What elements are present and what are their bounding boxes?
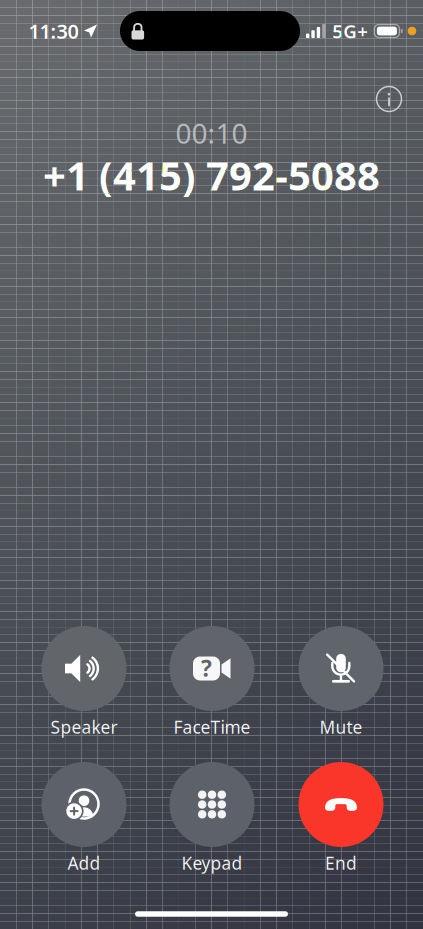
staticText: Keypad	[181, 851, 242, 874]
staticText: 11:30	[28, 18, 78, 44]
button[interactable]: End	[287, 762, 395, 880]
button[interactable]: Speaker	[30, 626, 138, 744]
staticText: FaceTime	[173, 715, 250, 738]
button[interactable]: Add	[30, 762, 138, 880]
button[interactable]: ?	[158, 626, 266, 744]
staticText: +1 (415) 792-5088	[43, 148, 380, 201]
button[interactable]: Mute	[287, 626, 395, 744]
staticText: Mute	[319, 715, 362, 738]
staticText: Add	[67, 851, 100, 874]
staticText: 5G+	[332, 19, 368, 43]
staticText: Speaker	[50, 715, 117, 738]
staticText: 00:10	[175, 114, 247, 152]
staticText: ?	[201, 653, 212, 683]
button[interactable]: Call details	[367, 77, 411, 121]
button[interactable]: Keypad	[158, 762, 266, 880]
staticText: End	[325, 851, 357, 874]
